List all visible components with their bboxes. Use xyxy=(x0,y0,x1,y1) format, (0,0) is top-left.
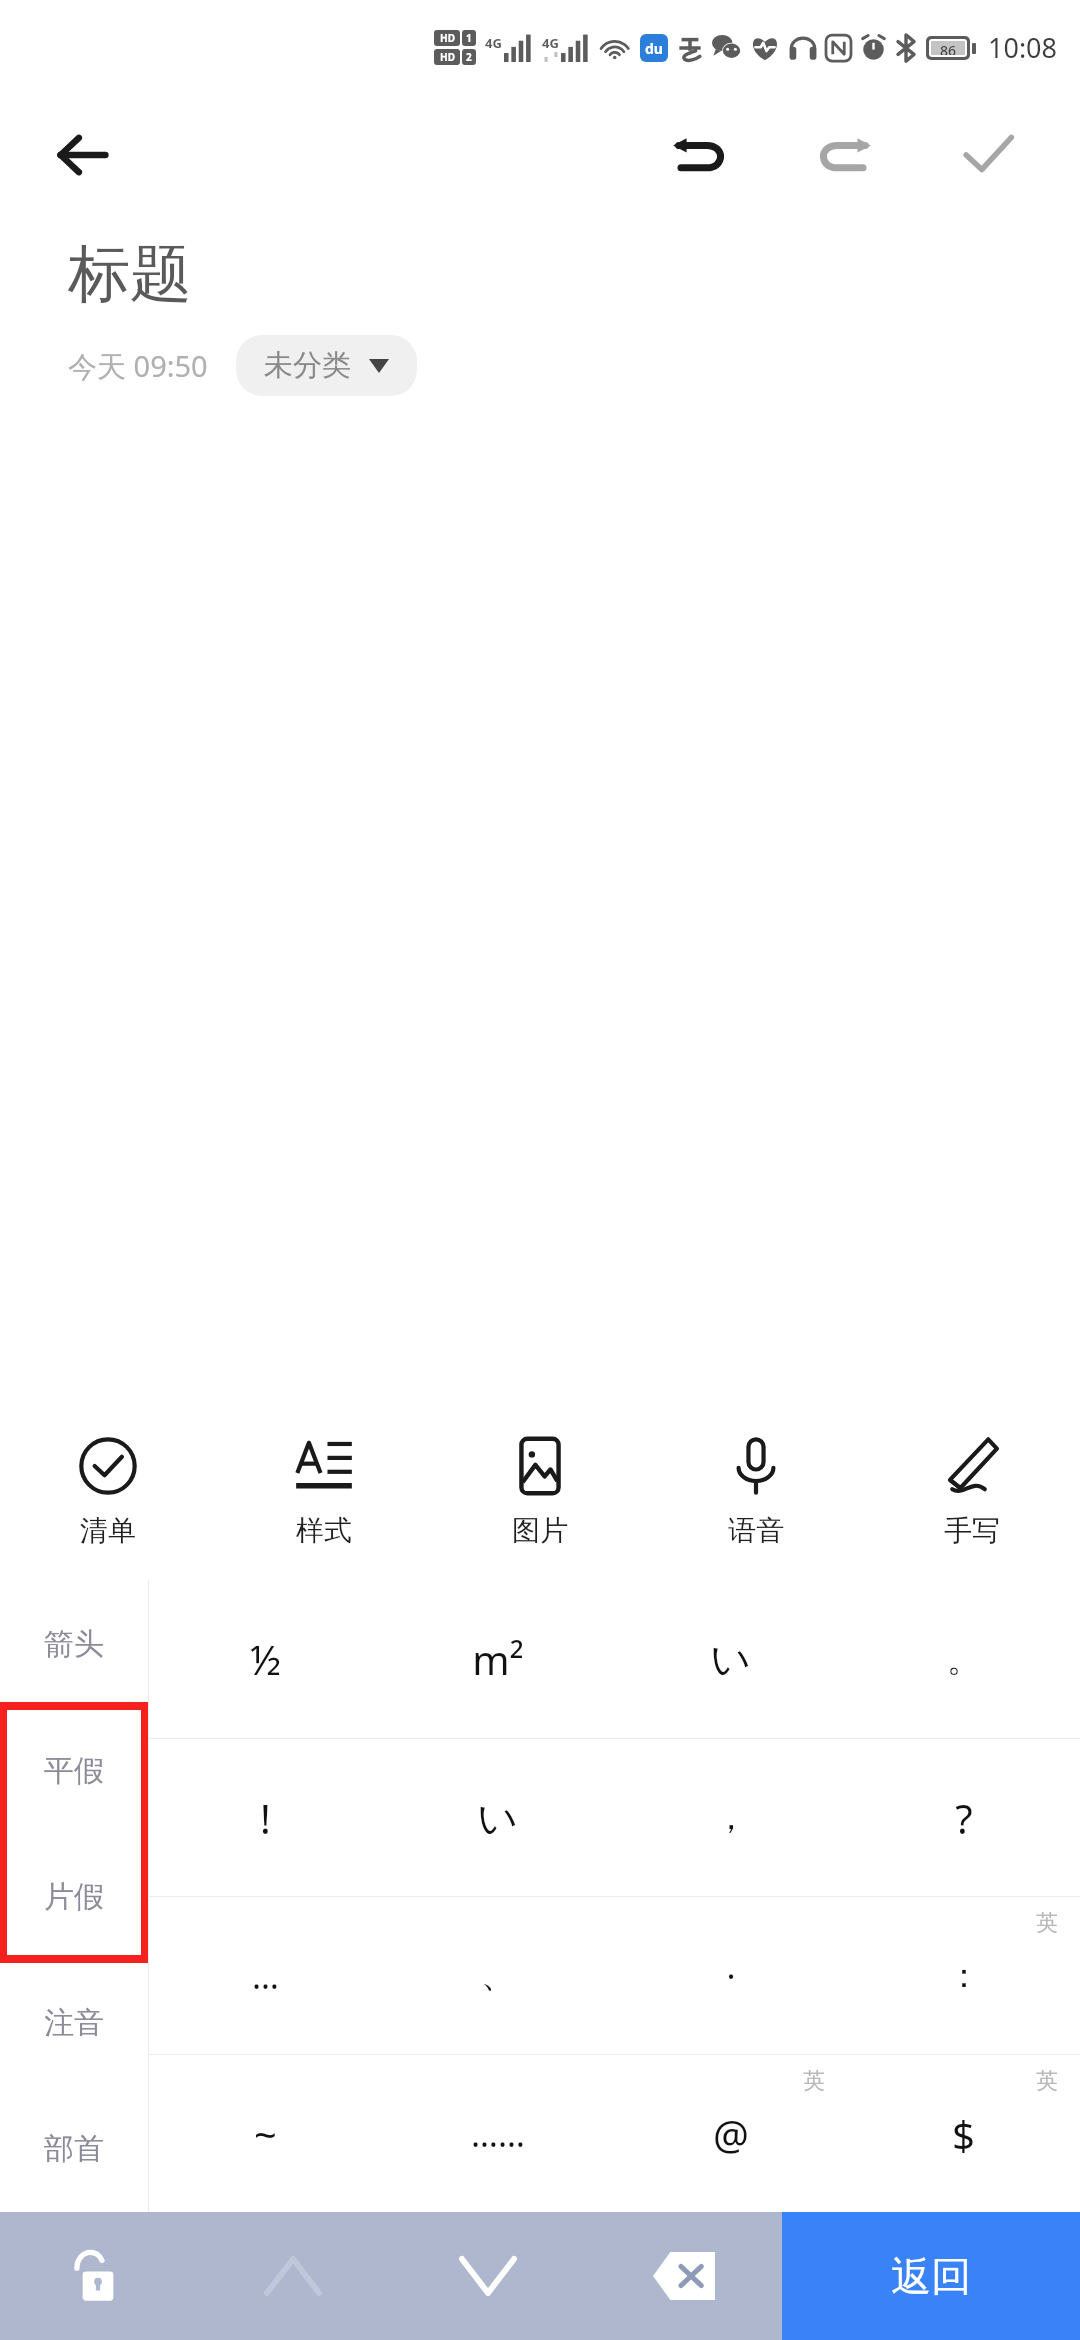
staticText: い xyxy=(477,1793,518,1843)
staticText: $ xyxy=(952,2107,975,2161)
button[interactable]: 样式 xyxy=(216,1402,432,1580)
button[interactable]: ， xyxy=(614,1739,847,1896)
button[interactable]: 箭头 xyxy=(0,1580,148,1707)
staticText: ? xyxy=(955,1791,973,1845)
staticText: · xyxy=(726,1953,736,1999)
button[interactable]: Undo xyxy=(652,107,748,203)
staticText: HD xyxy=(440,31,455,45)
staticText: 标题 xyxy=(68,235,192,313)
button[interactable]: 返回 xyxy=(782,2212,1080,2340)
staticText: 手写 xyxy=(944,1513,1000,1548)
button[interactable]: Down xyxy=(390,2212,586,2340)
button[interactable]: 部首 xyxy=(0,2086,148,2212)
button[interactable]: Redo xyxy=(796,107,892,203)
staticText: ! xyxy=(260,1791,271,1845)
button[interactable]: … xyxy=(149,1897,381,2054)
staticText: 、 xyxy=(481,1954,515,1997)
button[interactable]: $ xyxy=(847,2055,1080,2212)
staticText: 10:08 xyxy=(988,29,1058,66)
button[interactable]: Lock xyxy=(0,2212,195,2340)
button[interactable]: 图片 xyxy=(432,1402,648,1580)
staticText: 箭头 xyxy=(44,1625,104,1663)
button[interactable]: …… xyxy=(381,2055,614,2212)
button[interactable]: Back xyxy=(46,118,120,192)
staticText: du xyxy=(645,39,663,58)
button[interactable]: 清单 xyxy=(0,1402,216,1580)
staticText: 注音 xyxy=(44,2004,104,2042)
button[interactable]: ? xyxy=(847,1739,1080,1896)
button[interactable]: ½ xyxy=(149,1580,381,1738)
staticText: 片假 xyxy=(44,1878,104,1916)
staticText: ~ xyxy=(254,2107,277,2161)
staticText: 1 xyxy=(466,31,472,45)
staticText: 2 xyxy=(466,50,472,64)
staticText: … xyxy=(252,1953,279,1999)
staticText: 平假 xyxy=(44,1752,104,1790)
button[interactable]: @ xyxy=(614,2055,847,2212)
staticText: 4G xyxy=(542,34,559,52)
staticText: 英 xyxy=(1036,1909,1058,1937)
staticText: 样式 xyxy=(296,1513,352,1548)
staticText: ， xyxy=(714,1796,748,1839)
button[interactable]: 语音 xyxy=(648,1402,864,1580)
staticText: ½ xyxy=(250,1632,281,1686)
button[interactable]: Done xyxy=(940,107,1036,203)
staticText: 4G xyxy=(485,34,502,52)
button[interactable]: い xyxy=(614,1580,847,1738)
staticText: い xyxy=(710,1634,751,1684)
staticText: @ xyxy=(713,2107,749,2161)
staticText: 部首 xyxy=(44,2130,104,2168)
staticText: m² xyxy=(472,1632,524,1686)
button[interactable]: ~ xyxy=(149,2055,381,2212)
staticText: 英 xyxy=(803,2067,825,2095)
staticText: 返回 xyxy=(891,2251,971,2301)
staticText: 语音 xyxy=(728,1513,784,1548)
staticText: …… xyxy=(471,2111,525,2157)
staticText: 。 xyxy=(947,1638,981,1681)
button[interactable]: Backspace xyxy=(586,2212,782,2340)
staticText: 图片 xyxy=(512,1513,568,1548)
button[interactable]: 注音 xyxy=(0,1960,148,2086)
button[interactable]: 手写 xyxy=(864,1402,1080,1580)
button[interactable]: 未分类 xyxy=(236,335,417,396)
staticText: 未分类 xyxy=(264,347,351,384)
button[interactable]: 、 xyxy=(381,1897,614,2054)
button[interactable]: 。 xyxy=(847,1580,1080,1738)
button[interactable]: · xyxy=(614,1897,847,2054)
staticText: 清单 xyxy=(80,1513,136,1548)
button[interactable]: ： xyxy=(847,1897,1080,2054)
button[interactable]: い xyxy=(381,1739,614,1896)
button[interactable]: m² xyxy=(381,1580,614,1738)
button[interactable]: 片假 xyxy=(0,1834,148,1960)
staticText: 今天 09:50 xyxy=(68,346,208,386)
staticText: 英 xyxy=(1036,2067,1058,2095)
staticText: 86 xyxy=(940,41,957,55)
button[interactable]: ! xyxy=(149,1739,381,1896)
button[interactable]: 平假 xyxy=(0,1707,148,1834)
staticText: ： xyxy=(947,1954,981,1997)
staticText: HD xyxy=(440,50,455,64)
